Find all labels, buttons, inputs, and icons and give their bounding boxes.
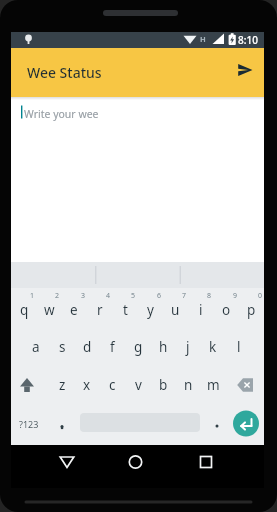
button[interactable] [205,412,229,436]
staticText: p [247,301,256,319]
staticText: f [110,338,115,356]
staticText: Write your wee [24,107,99,121]
staticText: x [83,376,91,394]
button[interactable]: ?123 [0,412,59,436]
staticText: ?123 [19,418,39,430]
button[interactable]: t [95,298,155,322]
staticText: v [135,376,142,394]
button[interactable]: w [19,298,79,322]
staticText: d [83,338,92,356]
staticText: c [109,376,116,394]
button[interactable]: k [183,335,243,359]
staticText: i [199,301,203,319]
button[interactable]: o [196,298,256,322]
button[interactable] [14,370,42,400]
staticText: 5 [131,291,136,301]
staticText: j [186,338,190,356]
button[interactable]: s [32,335,92,359]
button[interactable]: a [6,335,66,359]
staticText: r [97,301,103,319]
button[interactable]: n [158,373,218,397]
staticText: w [44,301,55,319]
staticText: 2 [55,291,60,301]
staticText: h [159,338,168,356]
staticText: u [171,301,180,319]
button[interactable]: h [133,335,193,359]
staticText: l [237,338,241,356]
button[interactable] [11,97,264,262]
staticText: b [159,376,168,394]
button[interactable]: e [44,298,104,322]
staticText: n [184,376,193,394]
staticText: t [123,301,128,319]
button[interactable]: v [108,373,168,397]
button[interactable]: r [70,298,130,322]
staticText: H [200,34,206,44]
button[interactable] [233,370,261,400]
staticText: 3 [81,291,86,301]
staticText: 0 [258,291,263,301]
staticText: 6 [157,291,162,301]
button[interactable]: g [108,335,168,359]
staticText: 7 [182,291,187,301]
button[interactable]: p [221,298,277,322]
staticText: q [20,301,29,319]
button[interactable]: i [171,298,231,322]
staticText: g [134,338,143,356]
staticText: m [207,376,220,394]
staticText: 8 [207,291,212,301]
button[interactable] [192,448,220,476]
staticText: o [222,301,231,319]
button[interactable]: u [145,298,205,322]
button[interactable]: b [133,373,193,397]
button[interactable]: d [57,335,117,359]
button[interactable]: l [209,335,269,359]
staticText: a [32,338,40,356]
staticText: y [147,301,154,319]
staticText: Wee Status [27,63,102,82]
button[interactable]: j [158,335,218,359]
staticText: k [209,338,217,356]
staticText: e [70,301,78,319]
button[interactable]: f [82,335,142,359]
button[interactable]: x [57,373,117,397]
button[interactable]: q [0,298,54,322]
button[interactable]: c [82,373,142,397]
button[interactable] [53,448,81,476]
button[interactable] [121,448,149,476]
staticText: 4 [106,291,111,301]
button[interactable] [233,410,260,437]
button[interactable] [230,55,262,87]
staticText: z [59,376,66,394]
button[interactable] [50,412,74,436]
button[interactable]: z [32,373,92,397]
button[interactable]: m [183,373,243,397]
staticText: 8:10 [238,33,258,47]
staticText: 1 [30,291,35,301]
staticText: s [59,338,66,356]
staticText: 9 [233,291,238,301]
button[interactable]: y [120,298,180,322]
